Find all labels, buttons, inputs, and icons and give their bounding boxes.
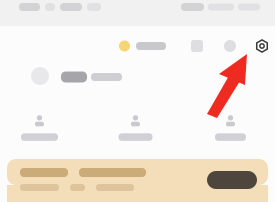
- button[interactable]: Profile photo: [31, 67, 49, 85]
- button[interactable]: Membership status: [119, 39, 166, 53]
- button[interactable]: Customer service: [224, 40, 236, 52]
- button[interactable]: Account name: [61, 71, 122, 83]
- button[interactable]: Settings: [255, 39, 269, 53]
- button[interactable]: Stat: [95, 111, 175, 145]
- button[interactable]: Stat: [190, 111, 270, 145]
- button[interactable]: Stat: [0, 111, 79, 145]
- button[interactable]: Scan code: [191, 40, 203, 52]
- button[interactable]: Open offer: [207, 171, 257, 189]
